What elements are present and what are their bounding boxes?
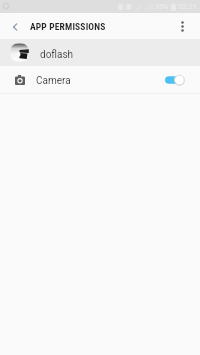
staticText: Camera (36, 75, 71, 87)
staticText: doflash (40, 49, 74, 61)
button[interactable]: Camera permission, on (165, 73, 185, 87)
button[interactable]: Camera (0, 66, 200, 93)
button[interactable]: doflash (0, 39, 200, 66)
staticText: 35% (155, 3, 169, 11)
staticText: 22:21 (178, 2, 198, 11)
button[interactable]: Navigate up (2, 13, 28, 39)
button[interactable]: More options (169, 13, 195, 39)
staticText: APP PERMISSIONS (30, 21, 106, 32)
